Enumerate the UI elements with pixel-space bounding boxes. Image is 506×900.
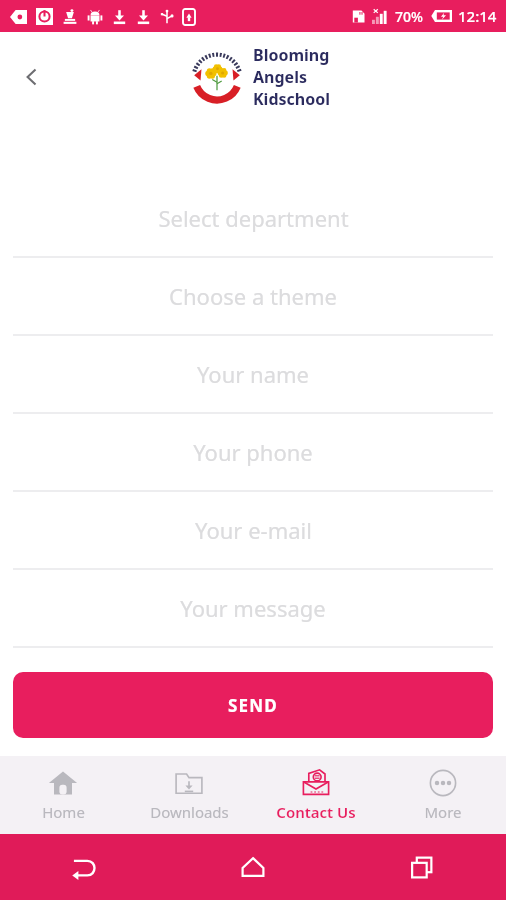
button[interactable]: Your e-mail (0, 492, 506, 570)
button[interactable]: Contact Us (252, 760, 379, 830)
staticText: Home (42, 802, 85, 822)
staticText: 70% (395, 7, 423, 26)
staticText: Blooming (253, 44, 330, 66)
button[interactable]: Back (0, 834, 168, 900)
staticText: Choose a theme (169, 281, 337, 311)
staticText: Contact Us (276, 802, 356, 822)
button[interactable]: Select department (0, 180, 506, 258)
button[interactable]: Back (8, 53, 56, 101)
button[interactable]: Your phone (0, 414, 506, 492)
button[interactable]: Choose a theme (0, 258, 506, 336)
staticText: Kidschool (253, 88, 330, 110)
button[interactable]: Home (168, 834, 337, 900)
button[interactable]: SEND (13, 672, 493, 738)
staticText: SEND (228, 694, 278, 717)
staticText: Your message (180, 593, 326, 623)
staticText: Your e-mail (195, 515, 312, 545)
staticText: Your name (197, 359, 309, 389)
button[interactable]: More (379, 760, 506, 830)
button[interactable]: Downloads (126, 760, 252, 830)
button[interactable]: Your name (0, 336, 506, 414)
staticText: Select department (158, 203, 349, 233)
staticText: Your phone (193, 437, 313, 467)
staticText: Downloads (150, 802, 229, 822)
button[interactable]: Home (0, 760, 126, 830)
staticText: Angels (253, 66, 307, 88)
button[interactable]: Your message (0, 570, 506, 648)
staticText: 12:14 (458, 6, 497, 26)
staticText: More (424, 802, 462, 822)
button[interactable]: Recent apps (337, 834, 506, 900)
